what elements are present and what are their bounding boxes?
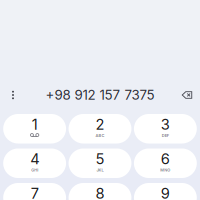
button[interactable]: 6 bbox=[134, 148, 197, 178]
staticText: MNO bbox=[160, 168, 170, 172]
button[interactable]: 5 bbox=[69, 148, 131, 178]
staticText: DEF bbox=[162, 133, 169, 138]
staticText: 3 bbox=[161, 115, 170, 133]
button[interactable]: 2 bbox=[69, 114, 131, 143]
button[interactable]: 3 bbox=[134, 114, 197, 143]
staticText: 4 bbox=[30, 150, 39, 168]
staticText: ABC bbox=[95, 133, 104, 138]
button[interactable]: 1 bbox=[3, 114, 66, 143]
staticText: 2 bbox=[95, 115, 104, 133]
staticText: GHI bbox=[31, 168, 38, 172]
staticText: 1 bbox=[32, 115, 38, 133]
staticText: JKL bbox=[96, 168, 103, 172]
staticText: 6 bbox=[161, 150, 170, 168]
staticText: 5 bbox=[95, 150, 104, 168]
staticText: 7 bbox=[31, 184, 39, 200]
button[interactable]: 8 bbox=[69, 183, 131, 200]
staticText: 8 bbox=[95, 184, 104, 200]
button[interactable]: Delete bbox=[178, 85, 196, 105]
button[interactable]: More bbox=[4, 85, 22, 105]
button[interactable]: 7 bbox=[3, 183, 66, 200]
button[interactable]: 9 bbox=[134, 183, 197, 200]
button[interactable]: 4 bbox=[3, 148, 66, 178]
staticText: +98 912 157 7375 bbox=[45, 87, 154, 103]
staticText: 9 bbox=[161, 184, 170, 200]
